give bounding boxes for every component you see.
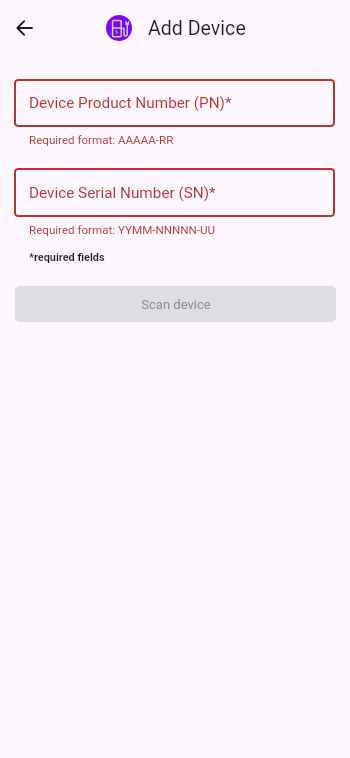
button[interactable]: Device Serial Number (SN)*	[14, 168, 335, 217]
staticText: Device Product Number (PN)*	[29, 94, 232, 112]
button[interactable]: Scan device	[15, 286, 336, 322]
button[interactable]: Back	[5, 8, 45, 48]
staticText: Add Device	[148, 17, 246, 40]
staticText: *required fields	[29, 251, 105, 264]
button[interactable]: Device Product Number (PN)*	[14, 79, 335, 127]
staticText: Device Serial Number (SN)*	[29, 184, 216, 202]
staticText: Required format: YYMM-NNNNN-UU	[29, 223, 216, 237]
staticText: Required format: AAAAA-RR	[29, 133, 174, 147]
staticText: Scan device	[141, 297, 211, 312]
